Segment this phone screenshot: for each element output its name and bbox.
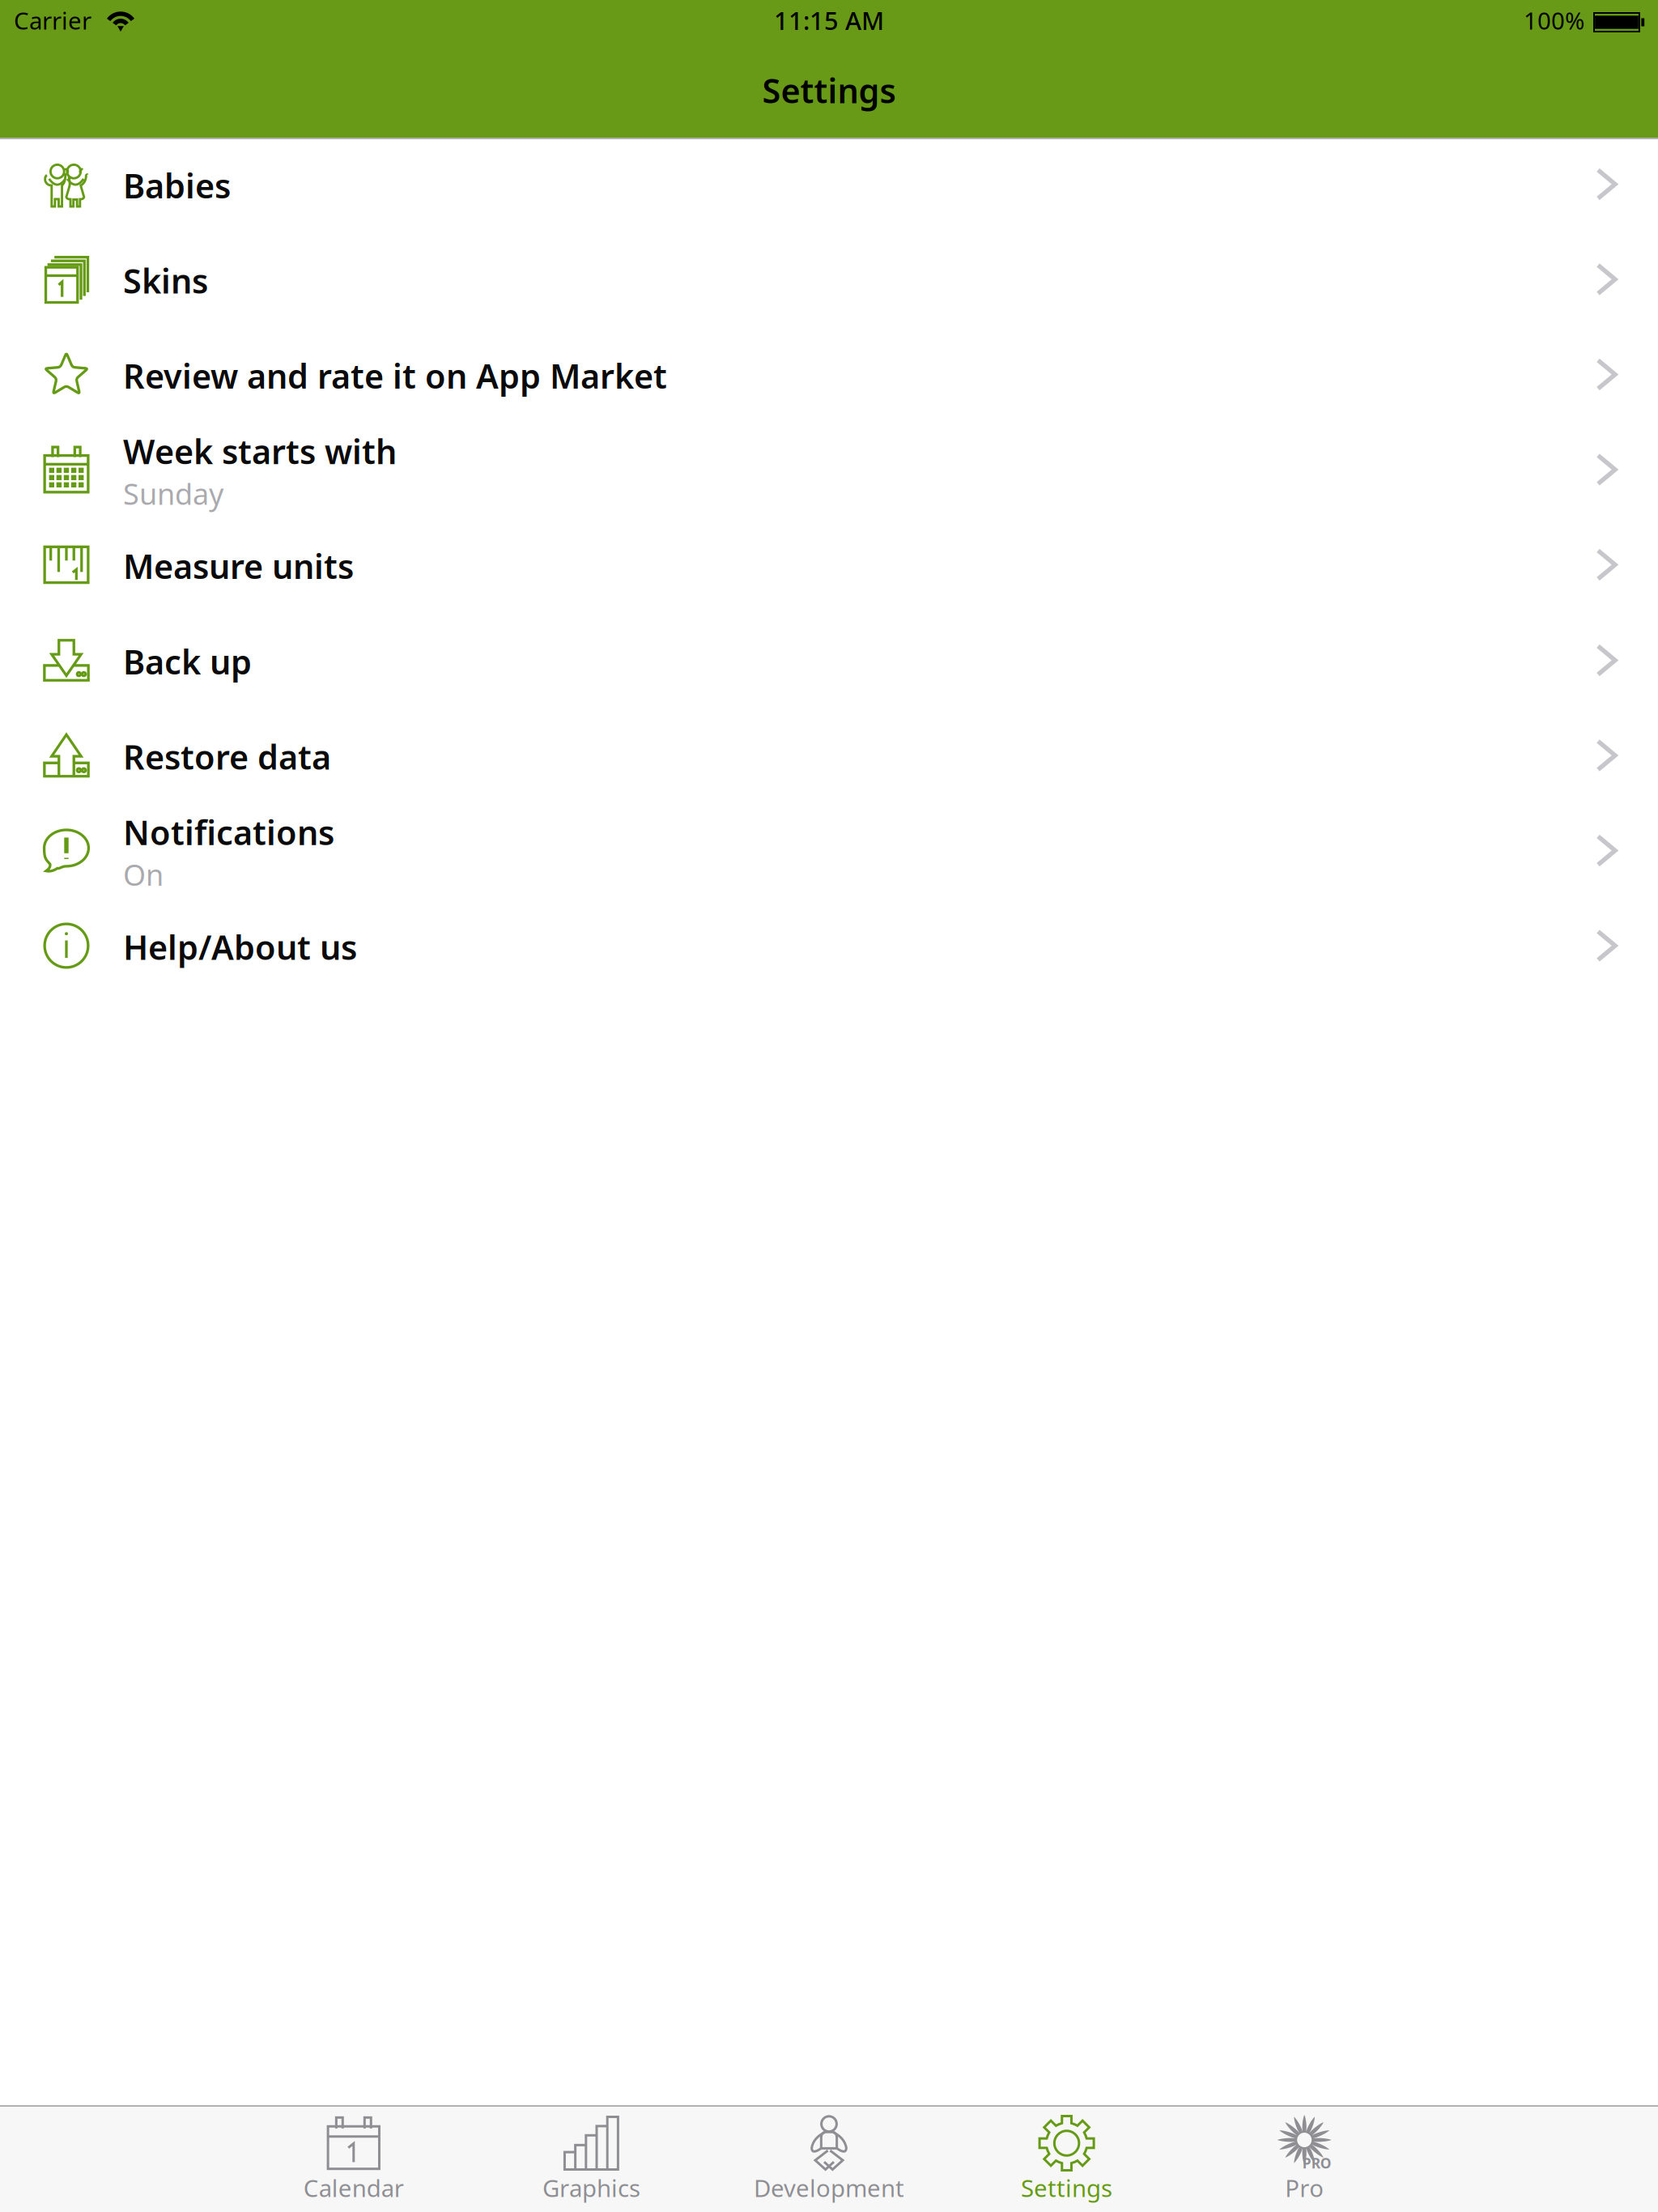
staticText: Calendar (303, 2172, 404, 2203)
button[interactable]: Week starts with (0, 425, 1658, 520)
staticText: Review and rate it on App Market (123, 353, 667, 398)
staticText: Settings (1021, 2172, 1112, 2203)
button[interactable]: Review and rate it on App Market (0, 330, 1658, 425)
staticText: 11:15 AM (774, 4, 884, 37)
staticText: Help/About us (123, 925, 357, 969)
button[interactable]: Back up (0, 615, 1658, 711)
button[interactable]: PRO (1186, 2107, 1423, 2212)
button[interactable]: Graphics (472, 2107, 710, 2212)
staticText: Week starts with (123, 429, 397, 473)
button[interactable]: Calendar (235, 2107, 472, 2212)
staticText: Notifications (123, 810, 334, 854)
button[interactable]: Skins (0, 235, 1658, 330)
button[interactable]: Help/About us (0, 901, 1658, 996)
staticText: Sunday (123, 474, 223, 513)
button[interactable]: Babies (0, 139, 1658, 235)
staticText: Graphics (542, 2172, 640, 2203)
staticText: 100% (1524, 4, 1584, 36)
button[interactable]: Measure units (0, 520, 1658, 615)
staticText: Carrier (14, 4, 91, 36)
button[interactable]: Restore data (0, 711, 1658, 806)
staticText: Restore data (123, 734, 331, 779)
button[interactable]: Settings (948, 2107, 1186, 2212)
button[interactable]: Development (710, 2107, 948, 2212)
staticText: On (123, 855, 164, 894)
staticText: Babies (123, 163, 231, 208)
staticText: Back up (123, 639, 252, 684)
staticText: Measure units (123, 544, 354, 588)
button[interactable]: Notifications (0, 806, 1658, 901)
staticText: Skins (123, 258, 208, 303)
staticText: PRO (1302, 2154, 1332, 2172)
staticText: Settings (762, 68, 896, 113)
staticText: Pro (1285, 2172, 1324, 2203)
staticText: Development (754, 2172, 904, 2203)
